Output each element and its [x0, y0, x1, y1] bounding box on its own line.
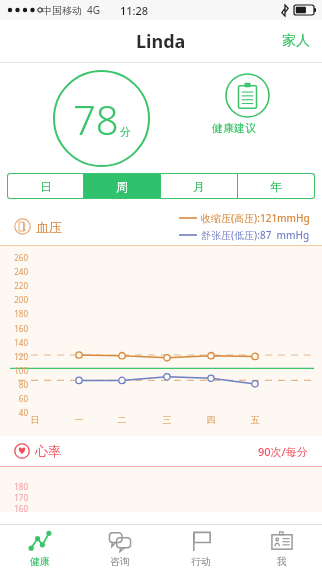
button[interactable]: 行动 — [160, 525, 241, 572]
staticText: 三 — [160, 414, 174, 425]
staticText: 周 — [116, 179, 128, 194]
button[interactable]: 健康评分 78 分 — [53, 70, 150, 167]
staticText: 我 — [277, 555, 287, 568]
button[interactable]: 月 — [161, 174, 237, 198]
staticText: 140 — [8, 337, 28, 348]
staticText: Linda — [136, 29, 186, 54]
staticText: 心率 — [35, 443, 61, 459]
button[interactable]: 咨询 — [80, 525, 160, 572]
button[interactable]: 年 — [238, 174, 314, 198]
button[interactable]: 健康建议 — [212, 73, 282, 135]
staticText: 40 — [8, 407, 28, 418]
staticText: 舒张压(低压):87 mmHg — [201, 228, 310, 242]
staticText: 日 — [28, 414, 42, 425]
staticText: 200 — [8, 294, 28, 305]
staticText: 日 — [40, 179, 52, 194]
staticText: 160 — [8, 323, 28, 334]
staticText: 170 — [8, 492, 28, 503]
staticText: 100 — [8, 365, 28, 376]
button[interactable]: 家人 — [270, 24, 322, 58]
staticText: 月 — [193, 179, 205, 194]
staticText: 160 — [8, 503, 28, 514]
staticText: 年 — [270, 179, 282, 194]
staticText: 260 — [8, 252, 28, 263]
staticText: 180 — [8, 308, 28, 319]
staticText: 60 — [8, 393, 28, 404]
staticText: 中国移动 — [42, 4, 82, 17]
staticText: 五 — [248, 414, 262, 425]
staticText: 4G — [87, 3, 100, 17]
staticText: 健康建议 — [212, 121, 282, 135]
staticText: 220 — [8, 280, 28, 291]
staticText: 咨询 — [110, 555, 130, 568]
button[interactable]: 健康 — [0, 525, 80, 572]
button[interactable]: 日 — [8, 174, 83, 198]
staticText: 78 — [73, 92, 119, 146]
staticText: 健康 — [30, 555, 50, 568]
staticText: 一 — [72, 414, 86, 425]
staticText: 行动 — [191, 555, 211, 568]
staticText: 家人 — [282, 32, 310, 50]
staticText: 11:28 — [120, 3, 149, 18]
staticText: 180 — [8, 481, 28, 492]
staticText: 90次/每分 — [258, 444, 308, 459]
button[interactable]: 我 — [241, 525, 322, 572]
staticText: 收缩压(高压):121mmHg — [201, 211, 310, 225]
staticText: 240 — [8, 266, 28, 277]
staticText: 80 — [8, 379, 28, 390]
staticText: 四 — [204, 414, 218, 425]
staticText: 二 — [115, 414, 129, 425]
staticText: 分 — [120, 125, 131, 139]
button[interactable]: 周 — [84, 174, 160, 198]
staticText: 120 — [8, 351, 28, 362]
staticText: 血压 — [36, 219, 62, 235]
